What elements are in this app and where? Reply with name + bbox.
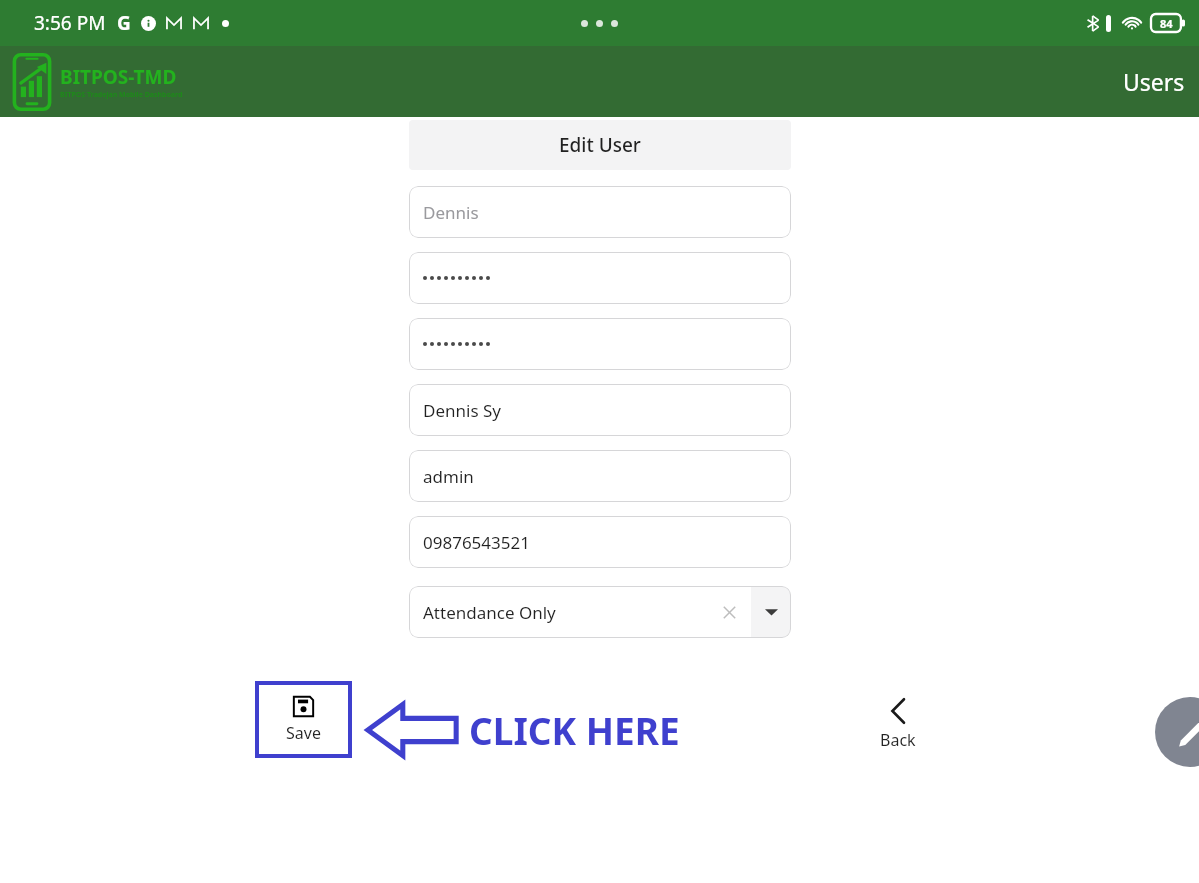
- staticText: 84: [1160, 16, 1173, 31]
- staticText: admin: [423, 465, 474, 488]
- button[interactable]: Dennis: [409, 186, 791, 238]
- button[interactable]: 09876543521: [409, 516, 791, 568]
- staticText: G: [117, 10, 131, 36]
- staticText: CLICK HERE: [469, 705, 680, 755]
- staticText: Attendance Only: [423, 601, 556, 624]
- staticText: BITPOS Tradejan Mobile Dashboard: [60, 90, 183, 100]
- button[interactable]: Open dropdown: [751, 586, 791, 638]
- staticText: 09876543521: [423, 531, 530, 554]
- button[interactable]: Back: [855, 689, 940, 759]
- button[interactable]: [409, 318, 791, 370]
- staticText: 3:56 PM: [34, 10, 106, 36]
- button[interactable]: Edit User: [409, 120, 791, 170]
- staticText: BITPOS-TMD: [60, 64, 177, 90]
- button[interactable]: [409, 252, 791, 304]
- staticText: Users: [1123, 66, 1185, 97]
- staticText: Edit User: [559, 132, 641, 158]
- staticText: Dennis Sy: [423, 399, 501, 422]
- button[interactable]: Edit: [1155, 697, 1199, 767]
- staticText: Save: [286, 722, 321, 744]
- button[interactable]: Save: [255, 681, 352, 758]
- button[interactable]: admin: [409, 450, 791, 502]
- staticText: Back: [880, 729, 916, 751]
- button[interactable]: Clear: [709, 592, 749, 632]
- button[interactable]: Dennis Sy: [409, 384, 791, 436]
- staticText: Dennis: [423, 201, 479, 224]
- button[interactable]: Attendance Only: [409, 586, 709, 638]
